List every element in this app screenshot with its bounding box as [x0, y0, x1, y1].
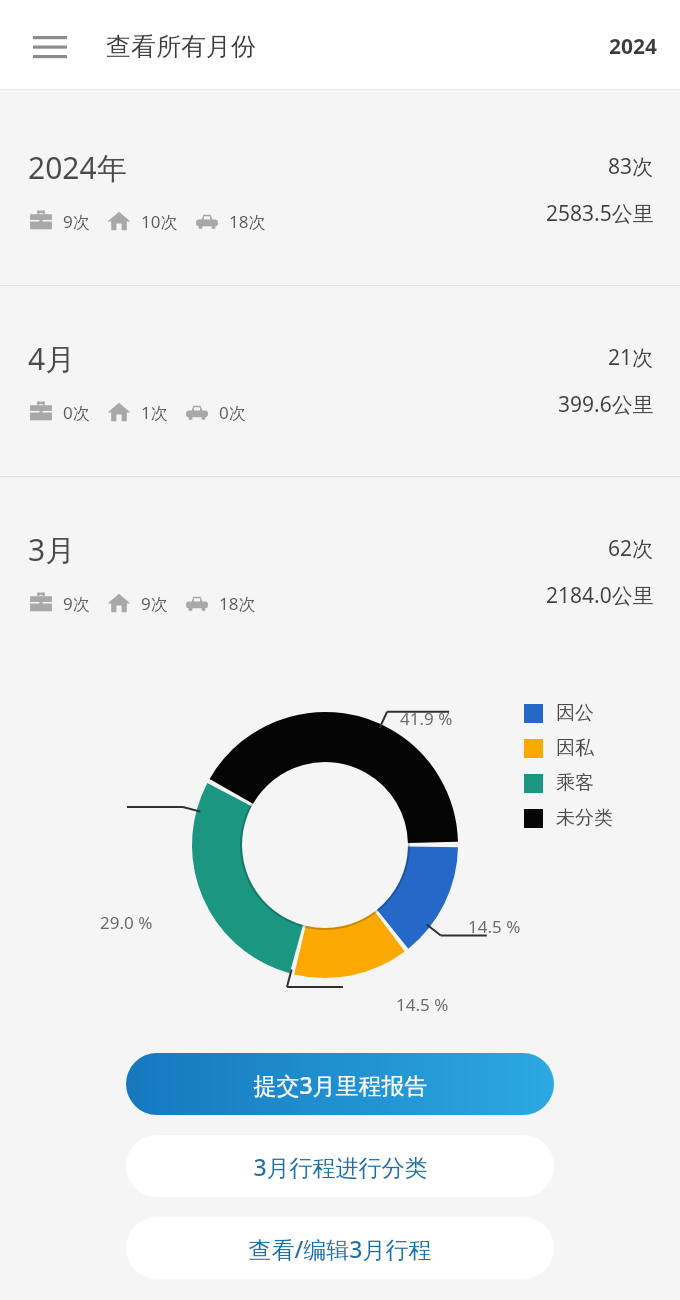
staticText: 399.6公里: [558, 390, 654, 419]
staticText: 查看/编辑3月行程: [248, 1233, 432, 1264]
staticText: 9次: [63, 592, 90, 615]
staticText: 9次: [63, 210, 90, 233]
staticText: 9次: [141, 592, 168, 615]
staticText: 18次: [229, 210, 266, 233]
staticText: 提交3月里程报告: [253, 1069, 428, 1100]
staticText: 3月: [28, 529, 76, 570]
staticText: 41.9 %: [400, 707, 453, 730]
button[interactable]: 2024: [609, 32, 658, 61]
staticText: 21次: [608, 343, 654, 372]
staticText: 未分类: [556, 806, 613, 830]
staticText: 10次: [141, 210, 178, 233]
staticText: 2024: [609, 32, 658, 61]
staticText: 18次: [219, 592, 256, 615]
staticText: 2583.5公里: [546, 199, 654, 228]
staticText: 14.5 %: [468, 915, 521, 938]
staticText: 0次: [219, 401, 246, 424]
staticText: 29.0 %: [100, 911, 153, 934]
staticText: 2184.0公里: [546, 581, 654, 610]
staticText: 查看所有月份: [106, 31, 256, 62]
button[interactable]: Menu: [22, 18, 78, 74]
staticText: 因私: [556, 736, 594, 760]
staticText: 83次: [608, 152, 654, 181]
staticText: 4月: [28, 338, 76, 379]
staticText: 3月行程进行分类: [253, 1151, 428, 1182]
staticText: 14.5 %: [396, 993, 449, 1016]
staticText: 2024年: [28, 147, 127, 188]
staticText: 0次: [63, 401, 90, 424]
staticText: 乘客: [556, 771, 594, 795]
button[interactable]: 查看/编辑3月行程: [126, 1217, 554, 1279]
button[interactable]: 3月: [0, 477, 680, 667]
button[interactable]: 2024年: [0, 95, 680, 285]
staticText: 62次: [608, 534, 654, 563]
staticText: 1次: [141, 401, 168, 424]
button[interactable]: 4月: [0, 286, 680, 476]
staticText: 因公: [556, 701, 594, 725]
button[interactable]: 提交3月里程报告: [126, 1053, 554, 1115]
button[interactable]: 3月行程进行分类: [126, 1135, 554, 1197]
